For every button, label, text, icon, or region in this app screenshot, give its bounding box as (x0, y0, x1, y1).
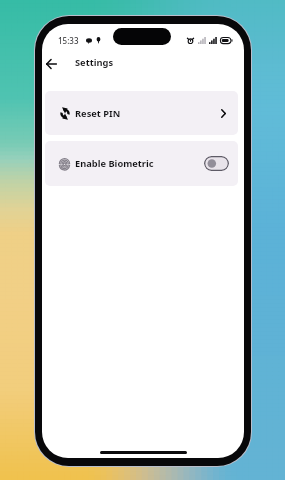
other: Open Reset PIN (218, 108, 229, 119)
button[interactable]: Reset PIN (45, 91, 238, 135)
staticText: Settings (75, 56, 114, 69)
staticText: Reset PIN (75, 107, 121, 120)
button[interactable]: Back (42, 52, 63, 76)
button[interactable]: Enable Biometric (204, 156, 229, 171)
button[interactable]: Enable Biometric (45, 141, 238, 186)
staticText: 15:33 (58, 35, 79, 46)
staticText: Enable Biometric (75, 157, 154, 170)
